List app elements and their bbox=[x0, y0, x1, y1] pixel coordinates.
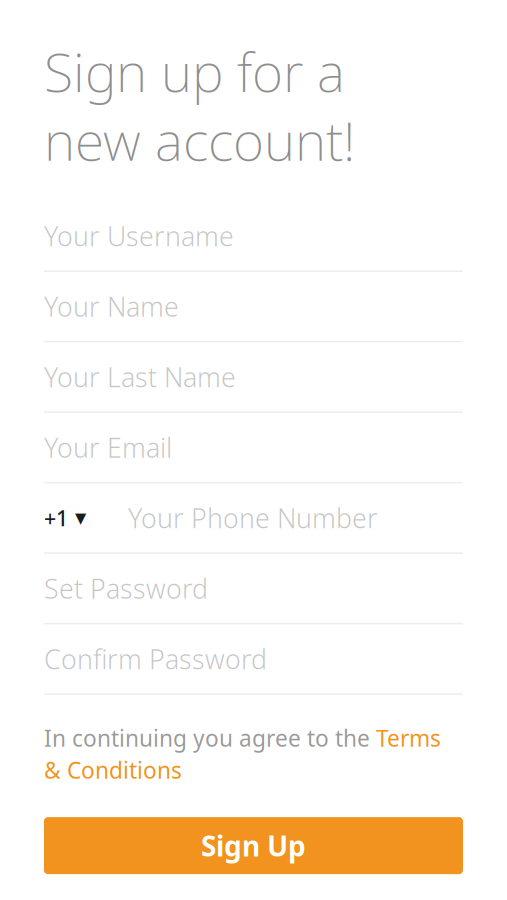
button[interactable]: Your Last Name bbox=[44, 342, 463, 413]
staticText: Your Phone Number bbox=[128, 500, 378, 536]
staticText: In continuing you agree to the bbox=[44, 723, 376, 753]
staticText: Your Username bbox=[44, 218, 234, 254]
staticText: & Conditions bbox=[44, 755, 182, 785]
button[interactable]: Your Username bbox=[44, 201, 463, 272]
staticText: Your Last Name bbox=[44, 359, 236, 395]
button[interactable]: Set Password bbox=[44, 554, 463, 624]
staticText: ▼ bbox=[75, 510, 86, 526]
staticText: Your Email bbox=[44, 430, 172, 465]
staticText: Your Name bbox=[44, 289, 179, 324]
staticText: Sign up for a bbox=[44, 36, 345, 107]
staticText: Terms bbox=[376, 723, 441, 753]
staticText: Sign Up bbox=[201, 827, 306, 864]
staticText: Confirm Password bbox=[44, 641, 267, 677]
staticText: Set Password bbox=[44, 571, 208, 606]
staticText: new account! bbox=[44, 105, 355, 175]
staticText: +1 bbox=[44, 504, 68, 532]
button[interactable]: Your Email bbox=[44, 413, 463, 483]
button[interactable]: & Conditions bbox=[44, 755, 463, 785]
button[interactable]: +1 bbox=[44, 483, 463, 554]
button[interactable]: Terms bbox=[376, 723, 441, 753]
button[interactable]: Sign Up bbox=[44, 817, 463, 874]
button[interactable]: Your Name bbox=[44, 272, 463, 342]
button[interactable]: Confirm Password bbox=[44, 624, 463, 695]
